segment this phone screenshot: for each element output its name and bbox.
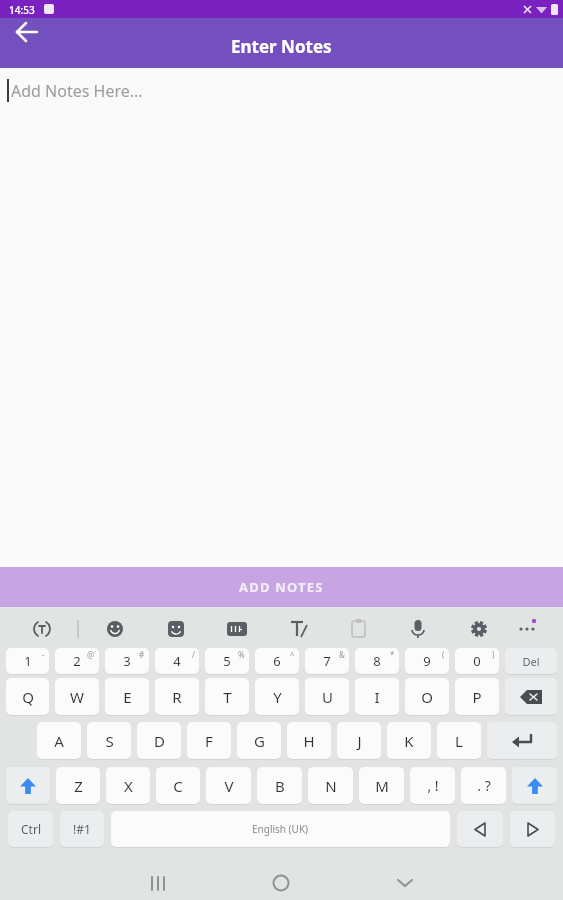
button[interactable]: . ? xyxy=(461,767,506,804)
button[interactable]: English (UK) xyxy=(111,811,450,847)
staticText: ADD NOTES xyxy=(239,578,324,596)
button[interactable]: L xyxy=(437,722,481,759)
button[interactable] xyxy=(6,767,50,804)
button[interactable]: 1 xyxy=(6,648,49,674)
button[interactable]: N xyxy=(308,767,353,804)
staticText: X xyxy=(124,776,133,796)
staticText: ( xyxy=(442,649,445,660)
button[interactable] xyxy=(96,609,134,647)
staticText: R xyxy=(172,687,182,707)
button[interactable]: Ctrl xyxy=(8,811,53,847)
button[interactable]: H xyxy=(287,722,331,759)
button[interactable]: G xyxy=(237,722,281,759)
button[interactable] xyxy=(487,722,557,759)
staticText: @ xyxy=(87,649,95,660)
button[interactable] xyxy=(512,767,557,804)
staticText: E xyxy=(123,687,132,707)
staticText: * xyxy=(390,649,395,660)
button[interactable] xyxy=(218,609,256,647)
button[interactable]: X xyxy=(106,767,150,804)
button[interactable]: ADD NOTES xyxy=(0,567,563,607)
staticText: Enter Notes xyxy=(231,35,332,58)
staticText: H xyxy=(303,731,315,751)
button[interactable]: K xyxy=(387,722,431,759)
button[interactable]: Q xyxy=(6,678,49,715)
staticText: & xyxy=(339,649,345,660)
button[interactable]: M xyxy=(359,767,404,804)
staticText: Y xyxy=(273,687,282,707)
button[interactable]: O xyxy=(405,678,449,715)
staticText: 1 xyxy=(24,652,32,670)
staticText: D xyxy=(154,731,165,751)
staticText: K xyxy=(404,731,414,751)
staticText: 0 xyxy=(473,652,481,670)
staticText: , ! xyxy=(427,776,439,795)
button[interactable]: F xyxy=(187,722,231,759)
button[interactable]: E xyxy=(105,678,149,715)
staticText: 2 xyxy=(73,652,81,670)
button[interactable] xyxy=(509,609,547,647)
button[interactable]: C xyxy=(156,767,200,804)
button[interactable] xyxy=(387,865,423,900)
staticText: T xyxy=(223,687,232,707)
button[interactable]: V xyxy=(206,767,251,804)
button[interactable]: 4 xyxy=(155,648,199,674)
button[interactable] xyxy=(457,811,503,847)
button[interactable]: 7 xyxy=(305,648,349,674)
staticText: 3 xyxy=(123,652,131,670)
button[interactable]: S xyxy=(87,722,131,759)
staticText: J xyxy=(357,731,362,751)
button[interactable]: 5 xyxy=(205,648,249,674)
staticText: / xyxy=(192,649,195,660)
button[interactable]: 8 xyxy=(355,648,399,674)
button[interactable]: 0 xyxy=(455,648,499,674)
button[interactable]: I xyxy=(355,678,399,715)
button[interactable]: T xyxy=(205,678,249,715)
button[interactable]: !#1 xyxy=(60,811,104,847)
staticText: # xyxy=(139,649,145,660)
button[interactable] xyxy=(157,609,195,647)
staticText: 9 xyxy=(423,652,431,670)
staticText: . ? xyxy=(477,776,491,795)
button[interactable]: 6 xyxy=(255,648,299,674)
button[interactable] xyxy=(140,865,176,900)
button[interactable]: B xyxy=(257,767,302,804)
staticText: 6 xyxy=(273,652,281,670)
button[interactable]: A xyxy=(37,722,81,759)
staticText: W xyxy=(70,687,84,707)
button[interactable] xyxy=(505,678,557,715)
button[interactable]: Y xyxy=(255,678,299,715)
staticText: O xyxy=(421,687,433,707)
staticText: Ctrl xyxy=(21,821,41,837)
staticText: !#1 xyxy=(73,821,91,837)
button[interactable]: D xyxy=(137,722,181,759)
staticText: G xyxy=(254,731,265,751)
button[interactable]: 9 xyxy=(405,648,449,674)
button[interactable] xyxy=(339,609,377,647)
button[interactable] xyxy=(459,609,497,647)
button[interactable] xyxy=(399,609,437,647)
staticText: ^ xyxy=(290,649,295,660)
button[interactable] xyxy=(279,609,317,647)
button[interactable]: 2 xyxy=(55,648,99,674)
button[interactable]: R xyxy=(155,678,199,715)
staticText: Del xyxy=(522,654,540,669)
staticText: English (UK) xyxy=(252,822,309,836)
staticText: Q xyxy=(22,687,34,707)
button[interactable]: Z xyxy=(56,767,100,804)
button[interactable]: J xyxy=(337,722,381,759)
button[interactable]: , ! xyxy=(410,767,455,804)
button[interactable] xyxy=(263,865,299,900)
staticText: - xyxy=(42,649,45,660)
button[interactable]: P xyxy=(455,678,499,715)
button[interactable] xyxy=(10,15,44,49)
staticText: 7 xyxy=(323,652,331,670)
button[interactable] xyxy=(510,811,555,847)
button[interactable]: Del xyxy=(505,648,557,674)
button[interactable]: 3 xyxy=(105,648,149,674)
button[interactable]: U xyxy=(305,678,349,715)
staticText: I xyxy=(374,687,380,707)
button[interactable]: W xyxy=(55,678,99,715)
staticText: B xyxy=(275,776,285,796)
button[interactable] xyxy=(23,609,61,647)
